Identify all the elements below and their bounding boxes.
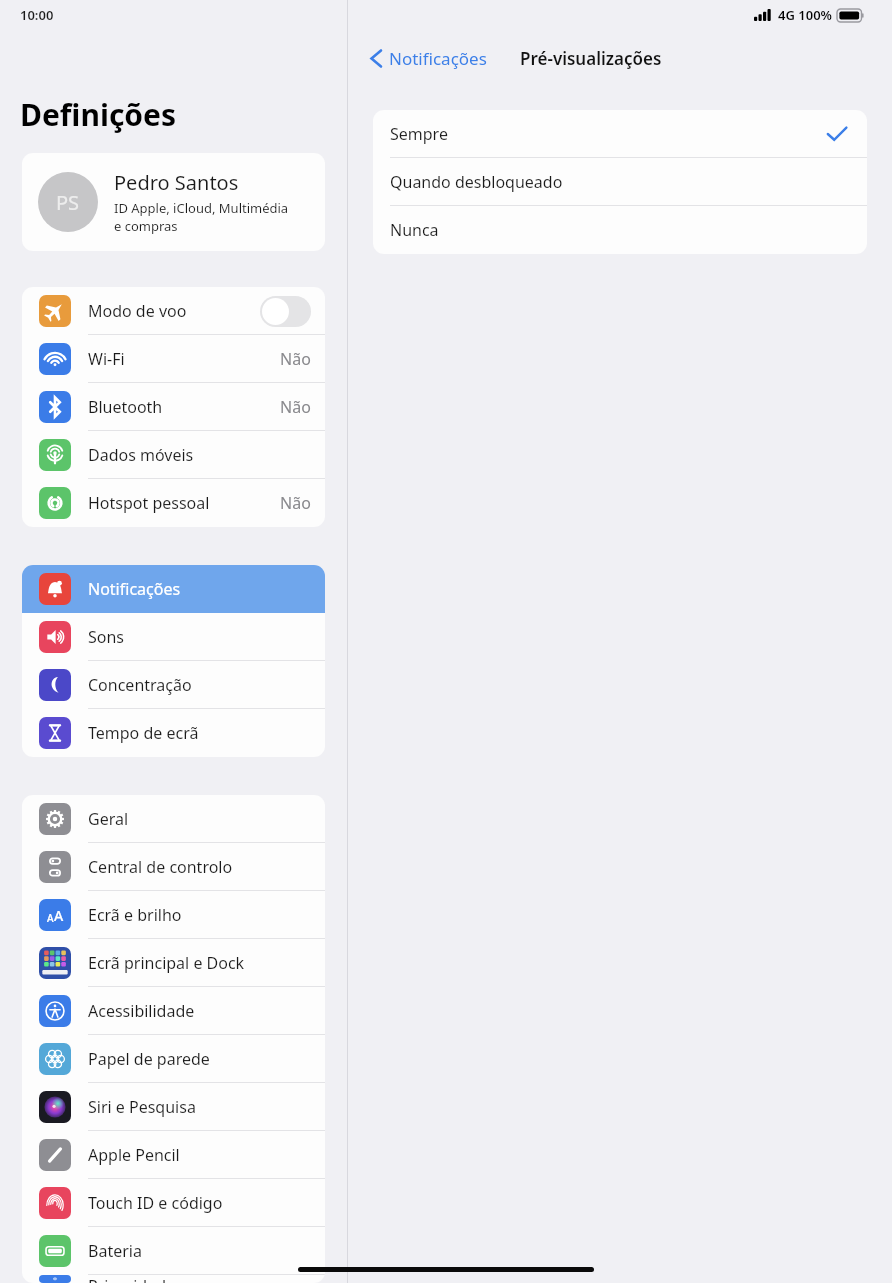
staticText: Definições [20, 94, 177, 135]
button[interactable]: Dados móveis [22, 431, 325, 479]
staticText: Sempre [390, 123, 827, 145]
button[interactable]: Acessibilidade [22, 987, 325, 1035]
staticText: 4G 100% [778, 6, 832, 24]
button[interactable]: Sempre [373, 110, 867, 158]
staticText: Privacidade [88, 1275, 311, 1283]
staticText: Modo de voo [88, 300, 260, 322]
button[interactable]: Siri e Pesquisa [22, 1083, 325, 1131]
staticText: Hotspot pessoal [88, 492, 280, 514]
button[interactable]: A [22, 891, 325, 939]
button[interactable]: Ecrã principal e Dock [22, 939, 325, 987]
staticText: Acessibilidade [88, 1000, 311, 1022]
button[interactable]: Papel de parede [22, 1035, 325, 1083]
button[interactable]: Tempo de ecrã [22, 709, 325, 757]
staticText: Pré-visualizações [520, 47, 662, 70]
staticText: Dados móveis [88, 444, 311, 466]
button[interactable]: Concentração [22, 661, 325, 709]
staticText: Bateria [88, 1240, 311, 1262]
button[interactable]: Privacidade [22, 1275, 325, 1283]
staticText: Bluetooth [88, 396, 280, 418]
button[interactable]: Wi-Fi [22, 335, 325, 383]
staticText: Siri e Pesquisa [88, 1096, 311, 1118]
staticText: Pedro Santos [114, 169, 239, 196]
button[interactable]: Bluetooth [22, 383, 325, 431]
staticText: Sons [88, 626, 311, 648]
staticText: Quando desbloqueado [390, 171, 847, 193]
button[interactable]: Modo de voo [22, 287, 325, 335]
staticText: Notificações [389, 47, 487, 70]
button[interactable]: Geral [22, 795, 325, 843]
staticText: Notificações [88, 578, 311, 600]
button[interactable]: Hotspot pessoal [22, 479, 325, 527]
staticText: Central de controlo [88, 856, 311, 878]
staticText: A [54, 906, 64, 925]
button[interactable]: Notificações [366, 41, 491, 76]
button[interactable]: Touch ID e código [22, 1179, 325, 1227]
button[interactable]: Sons [22, 613, 325, 661]
staticText: e compras [114, 217, 178, 235]
staticText: Nunca [390, 219, 847, 241]
button[interactable]: Apple Pencil [22, 1131, 325, 1179]
staticText: Não [280, 396, 311, 418]
staticText: Tempo de ecrã [88, 722, 311, 744]
staticText: Não [280, 492, 311, 514]
staticText: Ecrã principal e Dock [88, 952, 311, 974]
staticText: Touch ID e código [88, 1192, 311, 1214]
staticText: Concentração [88, 674, 311, 696]
button[interactable]: PS [22, 153, 325, 251]
button[interactable]: Central de controlo [22, 843, 325, 891]
staticText: ID Apple, iCloud, Multimédia [114, 199, 289, 217]
staticText: 10:00 [20, 6, 54, 24]
button[interactable]: Bateria [22, 1227, 325, 1275]
staticText: Não [280, 348, 311, 370]
staticText: Ecrã e brilho [88, 904, 311, 926]
staticText: PS [56, 189, 80, 216]
staticText: Geral [88, 808, 311, 830]
staticText: A [47, 911, 54, 925]
button[interactable]: Quando desbloqueado [373, 158, 867, 206]
staticText: Papel de parede [88, 1048, 311, 1070]
staticText: Apple Pencil [88, 1144, 311, 1166]
button[interactable]: Nunca [373, 206, 867, 254]
button[interactable]: Notificações [22, 565, 325, 613]
staticText: Wi-Fi [88, 348, 280, 370]
